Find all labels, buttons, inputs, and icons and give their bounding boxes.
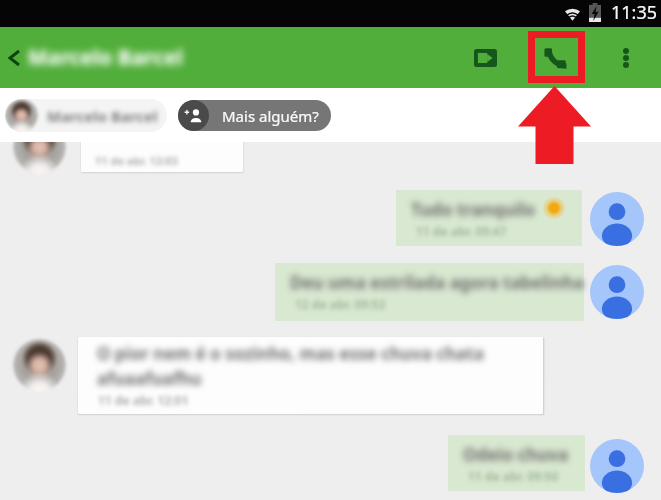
staticText: 11 de abr. 12:01 (98, 392, 189, 408)
staticText: O pior nem é o sozinho, mas esse chuva c… (97, 342, 484, 365)
staticText: 11 de abr. 09:47 (416, 223, 507, 239)
staticText: 11:35 (611, 0, 658, 25)
staticText: Marcelo Barcel (28, 43, 183, 72)
button[interactable]: Back (0, 40, 32, 76)
staticText: Marcelo Barcel (47, 106, 158, 126)
staticText: afuaafuafhu (97, 367, 202, 390)
staticText: 11 de abr. 12:03 (95, 153, 178, 168)
button[interactable]: Mais alguém? (178, 100, 331, 131)
button[interactable]: Voice call (532, 35, 578, 81)
staticText: 11 de abr. 09:50 (468, 468, 559, 484)
button[interactable]: Video call (462, 35, 508, 81)
staticText: Deu uma estrilada agora tabelinha (290, 271, 584, 294)
button[interactable]: More options (605, 37, 647, 79)
button[interactable]: Tudo tranquilo (396, 190, 582, 246)
staticText: Mais alguém? (222, 106, 319, 126)
staticText: 12 de abr. 09:52 (295, 296, 386, 312)
staticText: Odeio chuva (463, 443, 569, 466)
button[interactable]: O pior nem é o sozinho, mas esse chuva c… (78, 337, 543, 414)
button[interactable]: Marcelo Barcel (5, 99, 167, 132)
button[interactable]: Odeio chuva (448, 435, 585, 491)
staticText: Tudo tranquilo (411, 198, 536, 221)
button[interactable]: Deu uma estrilada agora tabelinha (275, 263, 584, 321)
